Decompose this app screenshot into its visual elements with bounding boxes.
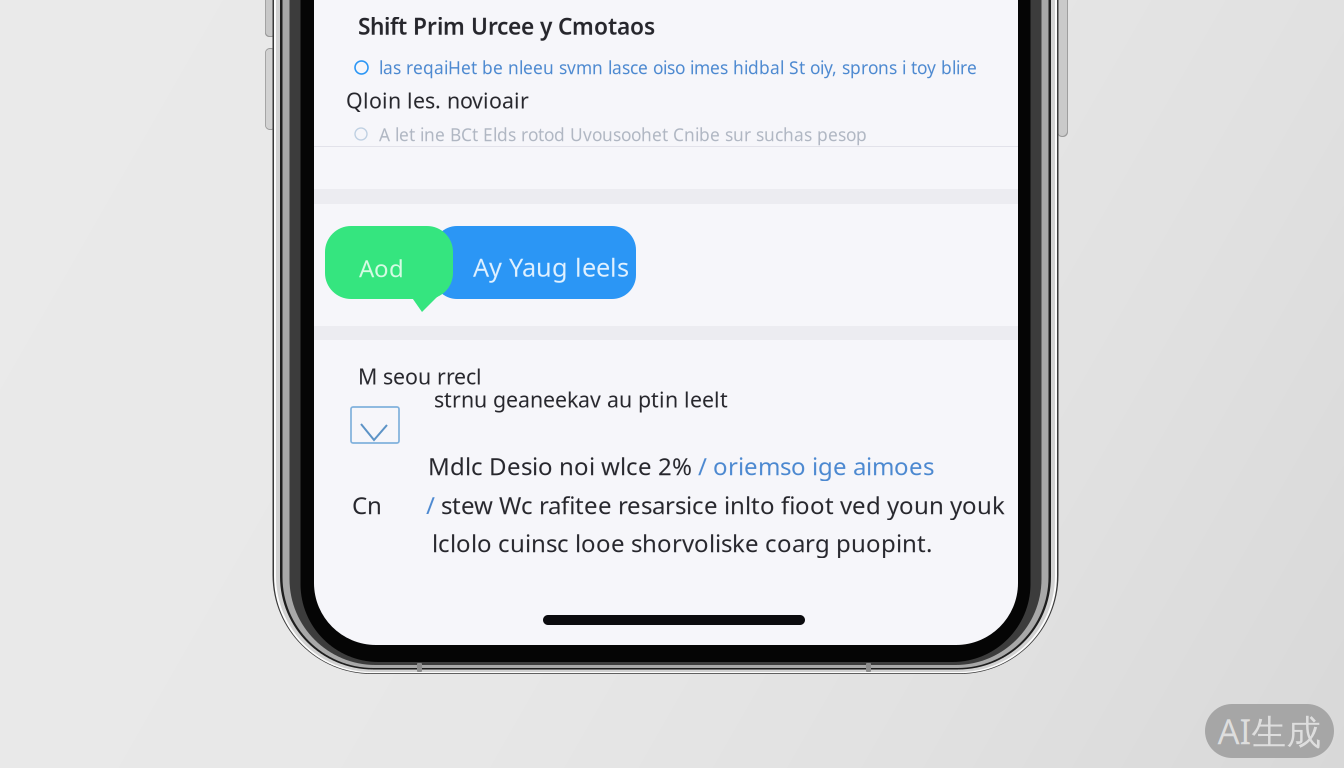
button[interactable]: Ay Yaug leels: [433, 226, 636, 299]
staticText: / oriemso ige aimoes: [698, 450, 934, 482]
staticText: lclolo cuinsc looe shorvoliske coarg puo…: [432, 527, 932, 559]
staticText: /: [426, 489, 441, 521]
button[interactable]: Aod: [325, 226, 453, 299]
staticText: Cn: [352, 489, 382, 521]
button[interactable]: M seou rrecl: [314, 340, 1018, 555]
staticText: Qloin les. novioair: [346, 86, 529, 114]
staticText: Aod: [359, 252, 404, 284]
staticText: las reqaiHet be nleeu svmn lasce oiso im…: [379, 56, 977, 79]
staticText: stew Wc rafitee resarsice inlto fioot ve…: [441, 489, 1005, 521]
button[interactable]: Download: [351, 407, 399, 443]
staticText: Shift Prim Urcee y Cmotaos: [358, 11, 655, 41]
button[interactable]: Shift Prim Urcee y Cmotaos: [314, 0, 1018, 146]
staticText: Ay Yaug leels: [473, 250, 629, 284]
staticText: strnu geaneekav au ptin leelt: [434, 385, 728, 413]
staticText: M seou rrecl: [358, 362, 482, 390]
staticText: A let ine BCt Elds rotod Uvousoohet Cnib…: [379, 123, 867, 146]
staticText: Mdlc Desio noi wlce 2%: [428, 450, 698, 482]
staticText: AI生成: [1217, 708, 1321, 754]
